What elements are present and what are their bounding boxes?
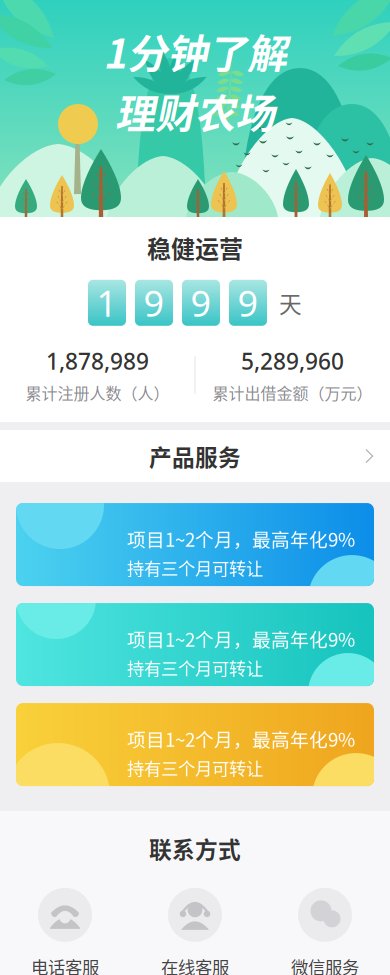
staticText: 项目1~2个月，最高年化9% xyxy=(127,725,355,752)
staticText: 理财农场 xyxy=(115,82,275,140)
staticText: 累计出借金额（万元） xyxy=(212,381,372,404)
button[interactable]: 电话客服 xyxy=(0,888,130,975)
staticText: 联系方式 xyxy=(149,832,241,865)
staticText: 1分钟了解 xyxy=(103,22,287,80)
staticText: 天 xyxy=(279,286,302,319)
staticText: 在线客服 xyxy=(161,954,229,975)
staticText: 项目1~2个月，最高年化9% xyxy=(127,625,355,652)
staticText: 9 xyxy=(190,279,211,327)
staticText: 稳健运营 xyxy=(147,230,243,265)
button[interactable]: 微信服务 xyxy=(260,888,390,975)
staticText: 1,878,989 xyxy=(46,346,149,376)
button[interactable]: 在线客服 xyxy=(130,888,260,975)
staticText: 微信服务 xyxy=(291,954,359,975)
staticText: 电话客服 xyxy=(31,954,99,975)
staticText: 持有三个月可转让 xyxy=(127,755,263,780)
staticText: 9 xyxy=(237,279,258,327)
staticText: 1 xyxy=(96,279,117,327)
staticText: 项目1~2个月，最高年化9% xyxy=(127,525,355,552)
button[interactable]: 项目1~2个月，最高年化9% xyxy=(16,603,374,686)
staticText: 累计注册人数（人） xyxy=(25,381,169,404)
staticText: 持有三个月可转让 xyxy=(127,655,263,680)
button[interactable]: 项目1~2个月，最高年化9% xyxy=(16,503,374,586)
staticText: 9 xyxy=(143,279,164,327)
button[interactable]: 项目1~2个月，最高年化9% xyxy=(16,703,374,786)
staticText: 5,289,960 xyxy=(241,346,344,376)
staticText: 产品服务 xyxy=(149,440,241,472)
staticText: 持有三个月可转让 xyxy=(127,555,263,580)
button[interactable]: 产品服务 xyxy=(0,430,390,482)
